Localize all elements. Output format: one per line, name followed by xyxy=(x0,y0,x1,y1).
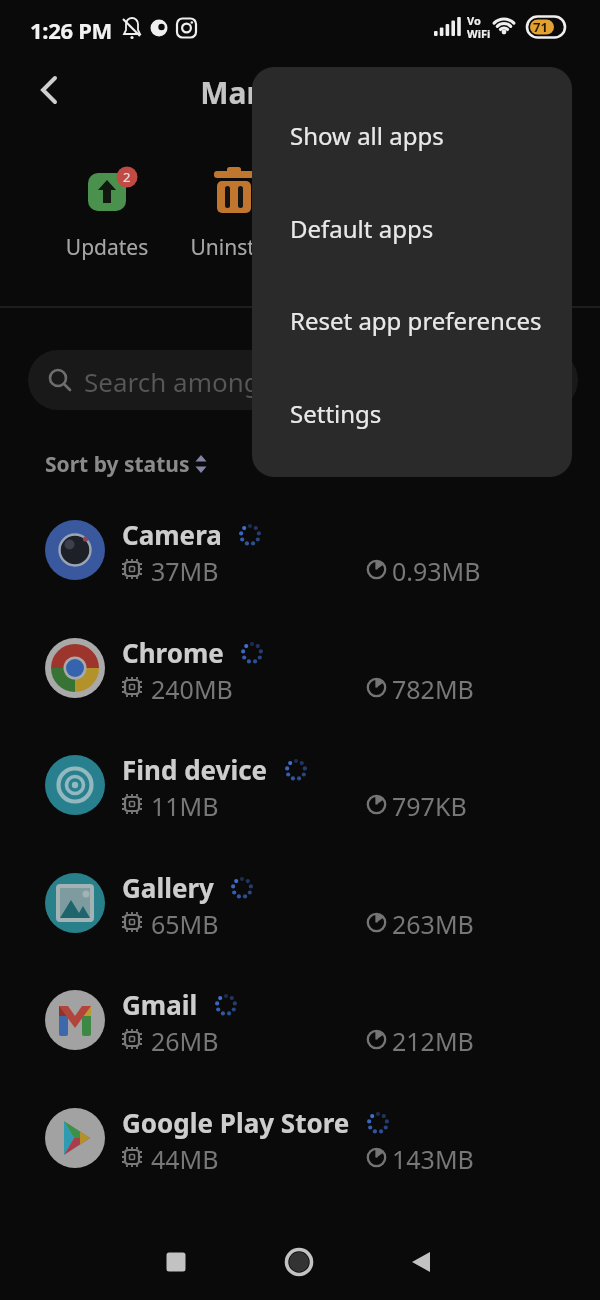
staticText: 44MB xyxy=(151,1142,219,1176)
staticText: 65MB xyxy=(151,907,219,941)
button[interactable] xyxy=(28,68,72,112)
button[interactable]: Gmail xyxy=(0,962,600,1078)
staticText: 37MB xyxy=(151,554,219,588)
button[interactable]: Chrome xyxy=(0,610,600,726)
staticText: 797KB xyxy=(392,789,467,823)
staticText: 2 xyxy=(123,168,131,186)
button[interactable]: Show all apps xyxy=(252,93,572,177)
staticText: WiFi xyxy=(467,26,491,41)
button[interactable]: Sort by status xyxy=(30,440,230,488)
button[interactable]: Gallery xyxy=(0,845,600,961)
staticText: Default apps xyxy=(290,212,434,245)
staticText: Vo xyxy=(467,13,481,28)
staticText: 212MB xyxy=(392,1024,474,1058)
button[interactable]: Camera xyxy=(0,492,600,608)
staticText: Sort by status xyxy=(45,450,190,479)
staticText: Search among 238 apps xyxy=(84,364,377,399)
staticText: 0.93MB xyxy=(392,554,481,588)
staticText: 143MB xyxy=(392,1142,474,1176)
staticText: 26MB xyxy=(151,1024,219,1058)
staticText: Manage apps xyxy=(0,72,600,113)
button[interactable]: Default apps xyxy=(252,186,572,270)
staticText: Camera xyxy=(122,517,222,552)
staticText: Updates xyxy=(57,233,157,262)
staticText: Google Play Store xyxy=(122,1105,350,1140)
button[interactable]: Uninstall xyxy=(184,165,284,265)
staticText: Find device xyxy=(122,752,268,787)
button[interactable]: Google Play Store xyxy=(0,1080,600,1196)
staticText: Chrome xyxy=(122,635,224,670)
staticText: Uninstall xyxy=(184,233,284,262)
staticText: Gmail xyxy=(122,987,198,1022)
button[interactable]: Settings xyxy=(252,371,572,455)
staticText: Settings xyxy=(290,397,382,430)
staticText: 11MB xyxy=(151,789,219,823)
button[interactable]: Find device xyxy=(0,727,600,843)
staticText: 263MB xyxy=(392,907,474,941)
staticText: 1:26 PM xyxy=(30,15,112,45)
staticText: 71 xyxy=(533,18,548,36)
button[interactable]: 2 xyxy=(57,165,157,265)
button[interactable]: Search among 238 apps xyxy=(28,350,578,410)
staticText: Show all apps xyxy=(290,119,444,152)
staticText: 782MB xyxy=(392,672,474,706)
staticText: 240MB xyxy=(151,672,233,706)
staticText: Gallery xyxy=(122,870,214,905)
button[interactable] xyxy=(391,1232,451,1292)
button[interactable]: Reset app preferences xyxy=(252,278,572,362)
staticText: Reset app preferences xyxy=(290,304,542,337)
button[interactable] xyxy=(269,1232,329,1292)
button[interactable] xyxy=(146,1232,206,1292)
